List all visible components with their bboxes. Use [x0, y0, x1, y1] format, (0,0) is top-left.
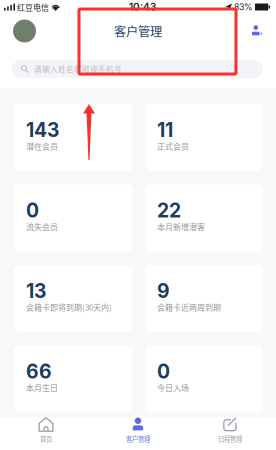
button[interactable]: 客户管理	[92, 417, 184, 443]
staticText: 日程管理	[218, 434, 242, 443]
staticText: 请输入姓名昵称或手机号	[34, 63, 122, 74]
staticText: 11	[157, 118, 173, 142]
button[interactable]: 请输入姓名昵称或手机号	[12, 60, 263, 78]
button[interactable]: 143	[14, 104, 132, 171]
staticText: 本月新增潜客	[157, 221, 205, 232]
button[interactable]: Profile	[13, 19, 36, 42]
staticText: 0	[26, 199, 39, 222]
button[interactable]: Add customer	[240, 19, 263, 42]
staticText: 10:43	[129, 1, 156, 13]
button[interactable]: 13	[14, 265, 132, 332]
staticText: 红豆电信	[15, 1, 51, 13]
staticText: 会籍卡近两周到期	[157, 301, 221, 313]
staticText: 83%	[232, 2, 255, 12]
staticText: 流失会员	[26, 221, 58, 232]
staticText: 9	[157, 279, 170, 303]
staticText: 22	[157, 199, 181, 222]
staticText: 13	[26, 279, 46, 303]
staticText: 本月生日	[26, 382, 58, 393]
staticText: 客户管理	[114, 22, 162, 40]
staticText: 首页	[40, 434, 52, 443]
button[interactable]: 9	[145, 265, 263, 332]
staticText: 客户管理	[126, 434, 150, 443]
staticText: 会籍卡即将到期(30天内)	[26, 301, 112, 313]
button[interactable]: 0	[14, 184, 132, 251]
button[interactable]: 首页	[0, 417, 92, 443]
staticText: 143	[26, 118, 59, 142]
staticText: 今日入场	[157, 382, 189, 393]
staticText: 0	[157, 360, 170, 383]
button[interactable]: 0	[145, 345, 263, 412]
button[interactable]: 11	[145, 104, 263, 171]
staticText: 潜在会员	[26, 140, 58, 152]
button[interactable]: 日程管理	[184, 417, 276, 443]
staticText: 正式会员	[157, 140, 189, 152]
staticText: 66	[26, 360, 52, 383]
button[interactable]: 22	[145, 184, 263, 251]
button[interactable]: 66	[14, 345, 132, 412]
